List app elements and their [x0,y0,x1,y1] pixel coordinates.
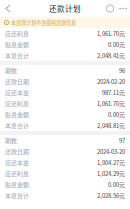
staticText: 2,048.41元 [97,51,125,60]
staticText: 0.00元 [108,110,125,119]
staticText: 还款计划 [49,3,81,14]
staticText: 2024-02-20 [97,77,125,86]
staticText: 97 [119,136,125,145]
staticText: 1,024.29元 [97,169,125,178]
staticText: 应还本金 [5,158,29,167]
staticText: 贴息金额 [5,180,29,189]
staticText: 96 [119,66,125,75]
staticText: 2,028.56元 [97,191,125,200]
staticText: 1,061.70元 [97,29,125,38]
staticText: 期数 [5,136,17,145]
staticText: 本息合计 [5,191,29,200]
staticText: 本还款计划不含提前还款信息 [11,19,76,26]
button[interactable]: More [116,1,130,15]
staticText: 应还利息 [5,169,29,178]
button[interactable]: Customer service [104,1,116,15]
staticText: 本息合计 [5,121,29,130]
staticText: 本息合计 [5,51,29,60]
staticText: 还款日期 [5,147,29,156]
staticText: 应还利息 [5,99,29,108]
staticText: 应还利息 [5,29,29,38]
staticText: 0.00元 [108,180,125,189]
button[interactable]: Back [0,1,16,15]
staticText: 987.11元 [102,88,125,97]
staticText: 1,061.70元 [97,99,125,108]
staticText: 贴息金额 [5,40,29,49]
staticText: 0.00元 [108,40,125,49]
staticText: 应还本金 [5,88,29,97]
staticText: 2,048.81元 [97,121,125,130]
staticText: 还款日期 [5,77,29,86]
staticText: 贴息金额 [5,110,29,119]
staticText: 2024-03-20 [97,147,125,156]
staticText: 1,004.27元 [97,158,125,167]
staticText: 期数 [5,66,17,75]
